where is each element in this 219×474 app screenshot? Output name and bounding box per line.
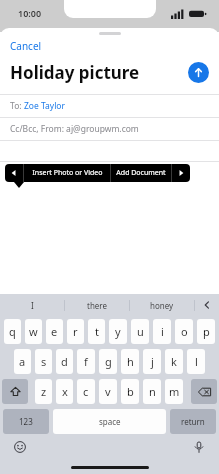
button[interactable]: return: [170, 409, 216, 434]
button[interactable]: q: [4, 319, 21, 344]
button[interactable]: p: [197, 319, 215, 344]
staticText: Insert Photo or Video: [32, 168, 103, 178]
button[interactable]: Insert Photo or Video: [24, 164, 110, 182]
staticText: Hi: [10, 167, 19, 179]
button[interactable]: y: [109, 319, 127, 344]
button[interactable]: honey: [130, 294, 194, 316]
staticText: y: [115, 324, 121, 339]
button[interactable]: f: [77, 349, 95, 374]
button[interactable]: s: [35, 349, 52, 374]
staticText: q: [9, 324, 16, 339]
button[interactable]: d: [56, 349, 73, 374]
staticText: Add Document: [116, 168, 166, 178]
button[interactable]: 123: [3, 409, 49, 434]
staticText: Zoe Taylor: [24, 100, 66, 112]
button[interactable]: Backspace: [191, 379, 217, 404]
staticText: a: [19, 354, 26, 369]
button[interactable]: Cc/Bcc, From: aj@groupwm.com: [0, 118, 219, 140]
button[interactable]: Send: [188, 62, 209, 83]
button[interactable]: Emoji: [10, 437, 30, 457]
staticText: z: [41, 384, 47, 399]
button[interactable]: w: [25, 319, 42, 344]
button[interactable]: I: [0, 294, 64, 316]
button[interactable]: o: [175, 319, 193, 344]
staticText: b: [127, 384, 134, 399]
staticText: space: [99, 416, 121, 427]
staticText: s: [41, 354, 47, 369]
staticText: e: [51, 324, 58, 339]
staticText: 10:00: [18, 7, 42, 19]
staticText: h: [127, 354, 134, 369]
button[interactable]: Add Document: [111, 164, 171, 182]
button[interactable]: v: [99, 379, 117, 404]
button[interactable]: b: [121, 379, 139, 404]
button[interactable]: g: [99, 349, 117, 374]
staticText: there: [87, 300, 107, 311]
staticText: f: [84, 354, 88, 369]
button[interactable]: space: [53, 409, 166, 434]
staticText: i: [161, 324, 164, 339]
staticText: To:: [10, 100, 24, 112]
button[interactable]: k: [165, 349, 183, 374]
button[interactable]: Next: [172, 164, 190, 182]
button[interactable]: x: [56, 379, 73, 404]
button[interactable]: r: [67, 319, 84, 344]
staticText: Cc/Bcc, From: aj@groupwm.com: [10, 123, 139, 135]
staticText: x: [62, 384, 68, 399]
button[interactable]: e: [46, 319, 63, 344]
staticText: I: [31, 300, 34, 311]
staticText: o: [181, 324, 188, 339]
staticText: n: [149, 384, 156, 399]
staticText: t: [95, 324, 99, 339]
button[interactable]: Previous: [5, 164, 23, 182]
staticText: d: [61, 354, 68, 369]
staticText: Cancel: [10, 39, 42, 53]
staticText: return: [181, 416, 205, 427]
button[interactable]: Collapse predictions: [195, 294, 219, 316]
staticText: 123: [19, 416, 33, 427]
button[interactable]: To:: [0, 95, 219, 117]
button[interactable]: h: [121, 349, 139, 374]
staticText: k: [171, 354, 177, 369]
staticText: v: [105, 384, 111, 399]
button[interactable]: n: [143, 379, 161, 404]
button[interactable]: j: [143, 349, 161, 374]
button[interactable]: there: [65, 294, 129, 316]
staticText: c: [83, 384, 89, 399]
staticText: w: [29, 324, 38, 339]
staticText: r: [73, 324, 78, 339]
staticText: m: [169, 384, 180, 399]
button[interactable]: i: [153, 319, 171, 344]
button[interactable]: Shift: [2, 379, 28, 404]
button[interactable]: Cancel: [0, 35, 52, 57]
button[interactable]: m: [165, 379, 183, 404]
button[interactable]: l: [187, 349, 205, 374]
button[interactable]: a: [14, 349, 31, 374]
staticText: Holiday picture: [10, 61, 188, 84]
staticText: g: [105, 354, 112, 369]
staticText: p: [203, 324, 210, 339]
button[interactable]: u: [131, 319, 149, 344]
button[interactable]: c: [77, 379, 95, 404]
staticText: l: [195, 354, 198, 369]
staticText: honey: [150, 300, 174, 311]
button[interactable]: t: [88, 319, 105, 344]
staticText: j: [151, 354, 154, 369]
staticText: u: [137, 324, 144, 339]
button[interactable]: Dictate: [189, 437, 209, 457]
button[interactable]: z: [35, 379, 52, 404]
